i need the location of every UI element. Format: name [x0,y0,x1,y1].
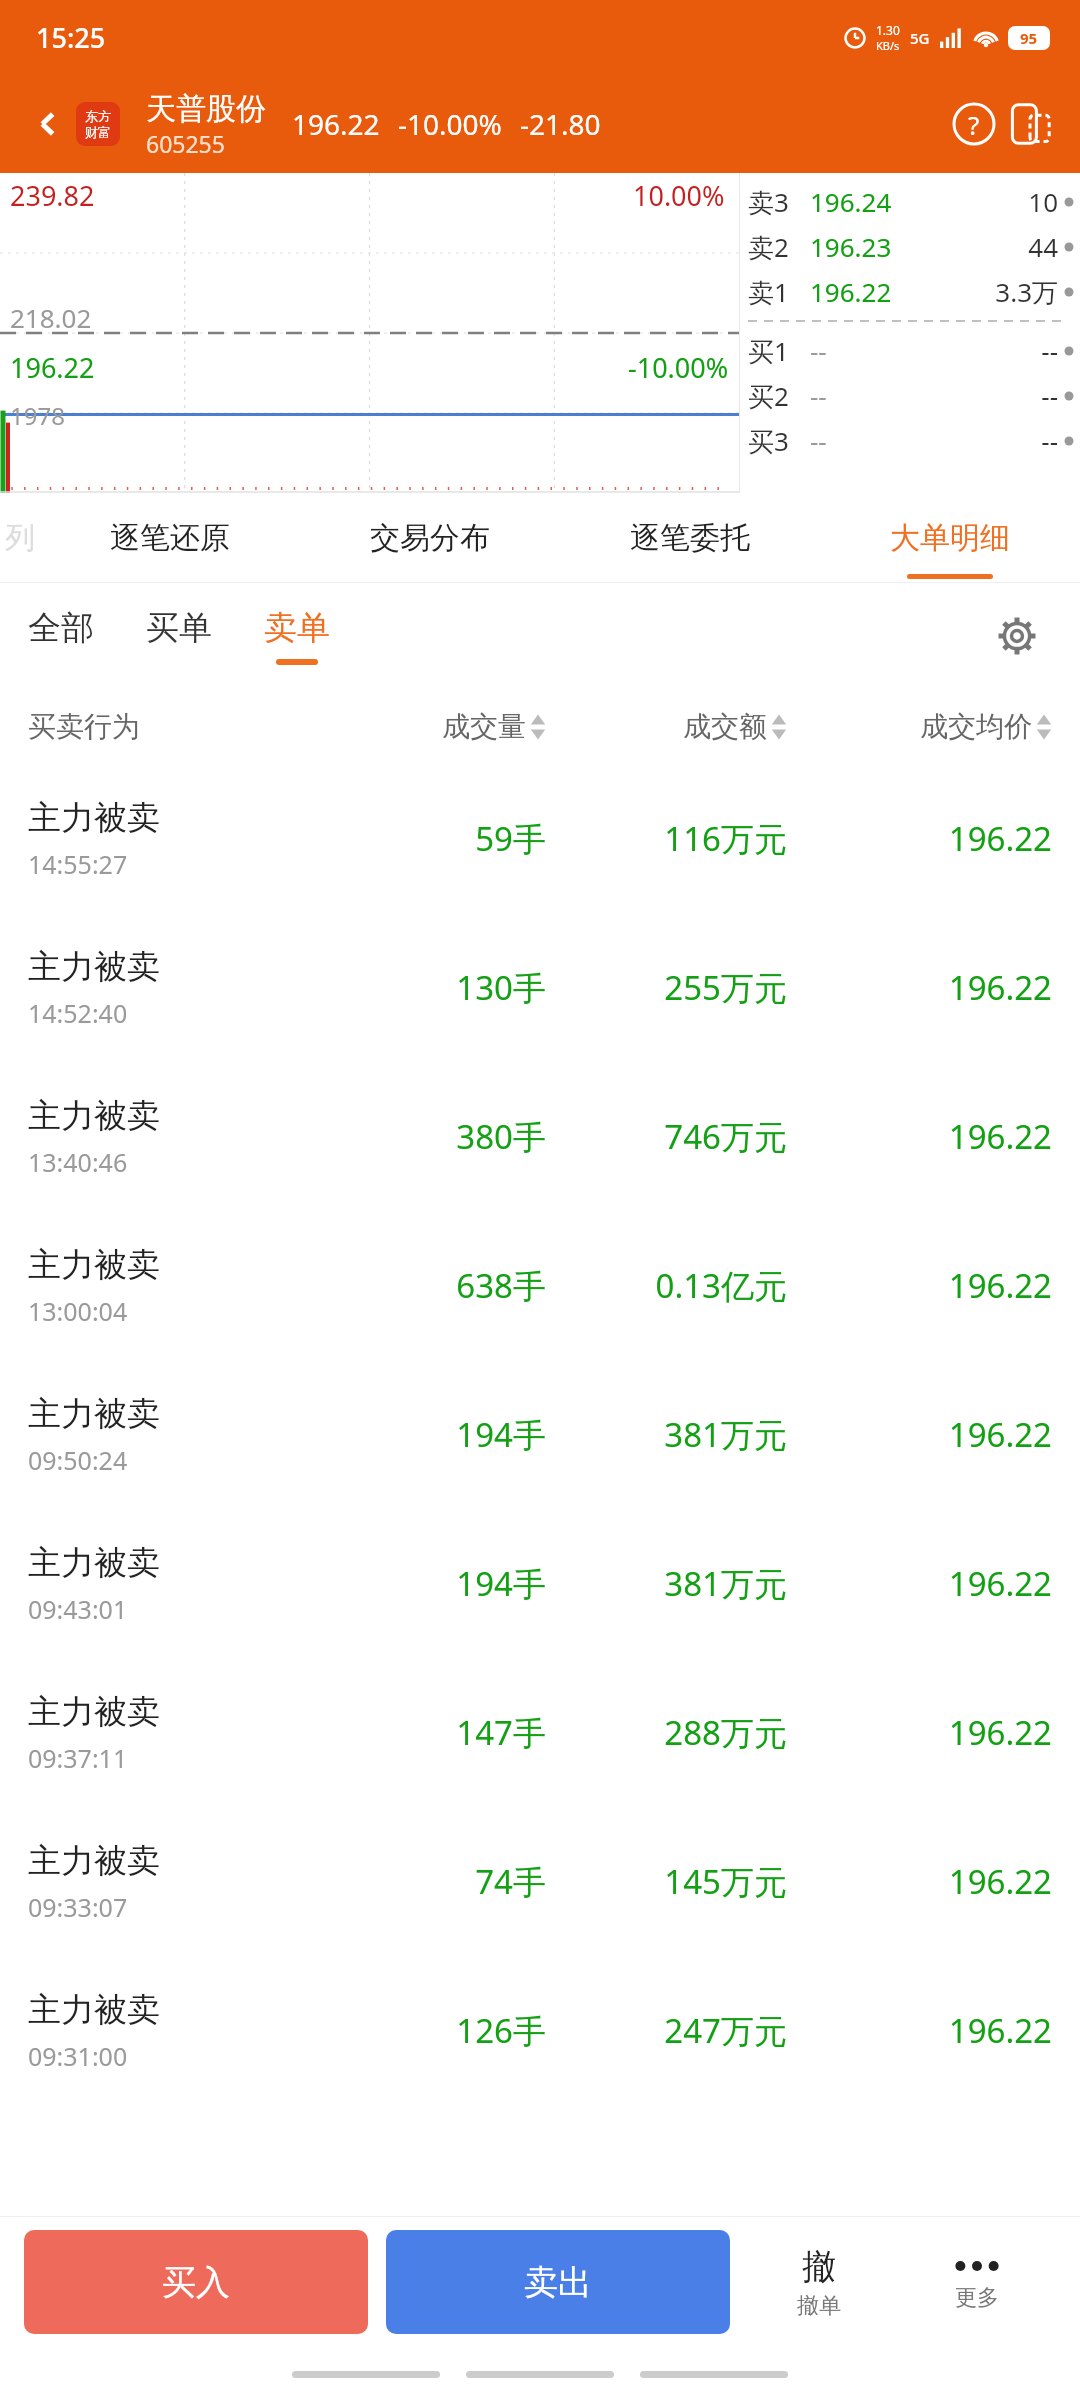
staticText: 59手 [305,816,546,861]
staticText: 239.82 [10,177,95,214]
staticText: 196.22 [292,105,380,143]
staticText: 13:40:46 [28,1145,128,1179]
button[interactable]: 更多 [898,2230,1056,2334]
staticText: 成交均价 [920,709,1032,744]
button[interactable]: 主力被卖 [28,1509,1052,1658]
button[interactable]: 东方 [76,102,120,146]
staticText: 194手 [305,1412,546,1457]
button[interactable]: 列 [0,493,40,583]
staticText: 116万元 [546,816,787,861]
staticText: 买单 [146,607,212,649]
staticText: 196.22 [787,965,1052,1010]
staticText: 1.30 [876,22,900,38]
staticText: 主力被卖 [28,946,160,988]
button[interactable]: 卖1 [748,269,1080,314]
staticText: 09:43:01 [28,1592,128,1626]
button[interactable]: 买2 [748,373,1080,418]
staticText: 1978 [10,399,65,432]
staticText: 196.22 [787,816,1052,861]
button[interactable]: Help [946,96,1002,152]
button[interactable]: 主力被卖 [28,1062,1052,1211]
staticText: 买3 [748,423,810,459]
button[interactable]: 逐笔还原 [40,493,300,583]
staticText: 381万元 [546,1561,787,1606]
button[interactable]: 主力被卖 [28,1956,1052,2105]
staticText: 218.02 [10,300,92,335]
staticText: 09:37:11 [28,1741,128,1775]
button[interactable]: 主力被卖 [28,913,1052,1062]
staticText: 买1 [748,333,810,369]
staticText: 196.23 [810,229,918,264]
staticText: 买2 [748,378,810,414]
button[interactable]: Full screen [1002,96,1058,152]
staticText: 605255 [146,128,225,159]
staticText: 194手 [305,1561,546,1606]
button[interactable]: 主力被卖 [28,1360,1052,1509]
button[interactable]: 撤 [740,2230,898,2334]
staticText: -- [810,378,918,413]
staticText: 746万元 [546,1114,787,1159]
staticText: 196.22 [10,349,95,386]
button[interactable]: 卖3 [748,179,1080,224]
staticText: 196.22 [787,1561,1052,1606]
staticText: 卖1 [748,274,810,310]
button[interactable]: 买入 [24,2230,368,2334]
staticText: 74手 [305,1859,546,1904]
staticText: 天普股份 [146,90,266,128]
staticText: 撤 [802,2245,836,2288]
staticText: KB/s [876,38,900,53]
staticText: 逐笔还原 [110,519,230,557]
staticText: 14:55:27 [28,847,128,881]
button[interactable]: 卖单 [264,607,330,665]
staticText: 3.3万 [918,274,1058,310]
button[interactable]: 买单 [146,607,212,665]
staticText: 15:25 [36,19,106,56]
button[interactable]: 卖出 [386,2230,730,2334]
staticText: 380手 [305,1114,546,1159]
button[interactable]: 卖2 [748,224,1080,269]
button[interactable]: 主力被卖 [28,1807,1052,1956]
staticText: 主力被卖 [28,1691,160,1733]
button[interactable]: 主力被卖 [28,764,1052,913]
button[interactable]: 大单明细 [820,493,1080,583]
staticText: 09:33:07 [28,1890,128,1924]
staticText: 196.22 [787,1114,1052,1159]
button[interactable]: Settings [988,607,1046,665]
staticText: 10 [918,184,1058,219]
staticText: 卖单 [264,607,330,649]
button[interactable]: 成交均价 [787,709,1052,744]
staticText: 卖2 [748,229,810,265]
staticText: 主力被卖 [28,1989,160,2031]
button[interactable]: 买1 [748,328,1080,373]
button[interactable]: 主力被卖 [28,1211,1052,1360]
staticText: 09:31:00 [28,2039,128,2073]
staticText: -10.00% [628,349,729,386]
staticText: -21.80 [520,105,601,143]
staticText: 14:52:40 [28,996,128,1030]
button[interactable]: 买3 [748,418,1080,463]
button[interactable]: 全部 [28,607,94,665]
staticText: 130手 [305,965,546,1010]
staticText: -- [918,423,1058,458]
button[interactable]: 成交量 [305,709,546,744]
button[interactable]: 主力被卖 [28,1658,1052,1807]
staticText: -- [918,333,1058,368]
staticText: 13:00:04 [28,1294,128,1328]
button[interactable]: 交易分布 [300,493,560,583]
button[interactable]: Back [22,98,74,150]
staticText: 主力被卖 [28,1244,160,1286]
staticText: 147手 [305,1710,546,1755]
staticText: -- [810,423,918,458]
staticText: 列 [5,519,35,557]
staticText: -- [918,378,1058,413]
button[interactable]: 逐笔委托 [560,493,820,583]
staticText: ? [968,107,980,142]
staticText: -10.00% [398,105,502,143]
staticText: 逐笔委托 [630,519,750,557]
staticText: 145万元 [546,1859,787,1904]
button[interactable]: 成交额 [546,709,787,744]
staticText: 288万元 [546,1710,787,1755]
staticText: 买入 [162,2261,230,2304]
staticText: -- [810,333,918,368]
staticText: 381万元 [546,1412,787,1457]
